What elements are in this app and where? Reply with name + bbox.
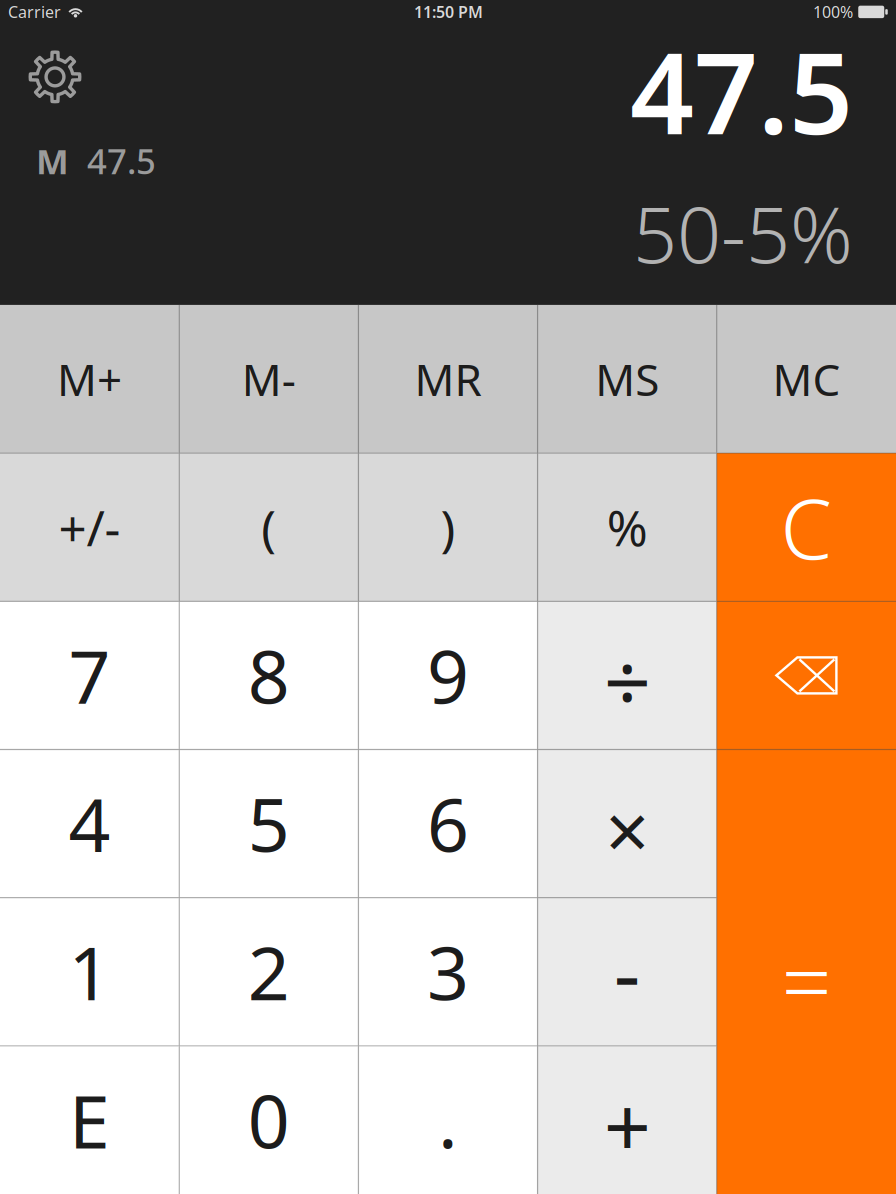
staticText: Carrier xyxy=(8,1,61,22)
button[interactable]: = xyxy=(717,749,896,1194)
button[interactable]: . xyxy=(358,1046,538,1194)
staticText: M+ xyxy=(57,350,122,408)
button[interactable]: Settings xyxy=(12,34,98,120)
staticText: M xyxy=(36,138,69,184)
staticText: 5 xyxy=(248,775,290,872)
staticText: 2 xyxy=(248,923,290,1020)
button[interactable]: 3 xyxy=(358,898,538,1046)
button[interactable]: C xyxy=(717,453,896,601)
staticText: MC xyxy=(772,350,840,408)
staticText: ) xyxy=(440,494,455,560)
button[interactable]: Delete xyxy=(717,601,896,749)
staticText: +/- xyxy=(59,494,121,560)
staticText: 0 xyxy=(248,1071,290,1169)
staticText: . xyxy=(438,1071,458,1169)
staticText: = xyxy=(781,921,831,1038)
staticText: 11:50 PM xyxy=(414,1,483,22)
staticText: % xyxy=(607,494,648,560)
button[interactable]: MR xyxy=(358,305,538,453)
staticText: × xyxy=(605,778,649,881)
staticText: MR xyxy=(414,350,481,408)
button[interactable]: ) xyxy=(358,453,538,601)
staticText: 3 xyxy=(427,923,469,1020)
button[interactable]: 4 xyxy=(0,749,179,898)
button[interactable]: MS xyxy=(538,305,717,453)
button[interactable]: 0 xyxy=(179,1046,358,1194)
staticText: 9 xyxy=(427,627,469,724)
button[interactable]: +/- xyxy=(0,453,179,601)
staticText: MS xyxy=(595,350,659,408)
staticText: 47.5 xyxy=(87,138,156,184)
button[interactable]: 9 xyxy=(358,601,538,749)
staticText: 7 xyxy=(69,627,111,724)
staticText: + xyxy=(604,1070,651,1180)
staticText: - xyxy=(614,917,641,1027)
staticText: C xyxy=(780,472,832,582)
staticText: 4 xyxy=(69,775,111,872)
button[interactable]: 6 xyxy=(358,749,538,898)
button[interactable]: ( xyxy=(179,453,358,601)
button[interactable]: E xyxy=(0,1046,179,1194)
staticText: 8 xyxy=(248,627,290,724)
staticText: 47.5 xyxy=(630,16,853,165)
button[interactable]: 2 xyxy=(179,898,358,1046)
button[interactable]: M- xyxy=(179,305,358,453)
button[interactable]: 8 xyxy=(179,601,358,749)
button[interactable]: ÷ xyxy=(538,601,717,749)
button[interactable]: + xyxy=(538,1046,717,1194)
button[interactable]: 5 xyxy=(179,749,358,898)
staticText: E xyxy=(69,1071,110,1169)
staticText: 100% xyxy=(813,1,853,22)
staticText: ( xyxy=(261,494,276,560)
button[interactable]: 7 xyxy=(0,601,179,749)
button[interactable]: × xyxy=(538,749,717,898)
staticText: ÷ xyxy=(604,625,651,735)
staticText: 1 xyxy=(69,923,111,1020)
staticText: 6 xyxy=(427,775,469,872)
button[interactable]: 1 xyxy=(0,898,179,1046)
staticText: M- xyxy=(242,350,296,408)
button[interactable]: - xyxy=(538,898,717,1046)
staticText: 50-5% xyxy=(633,182,853,284)
button[interactable]: MC xyxy=(717,305,896,453)
button[interactable]: M+ xyxy=(0,305,179,453)
button[interactable]: % xyxy=(538,453,717,601)
